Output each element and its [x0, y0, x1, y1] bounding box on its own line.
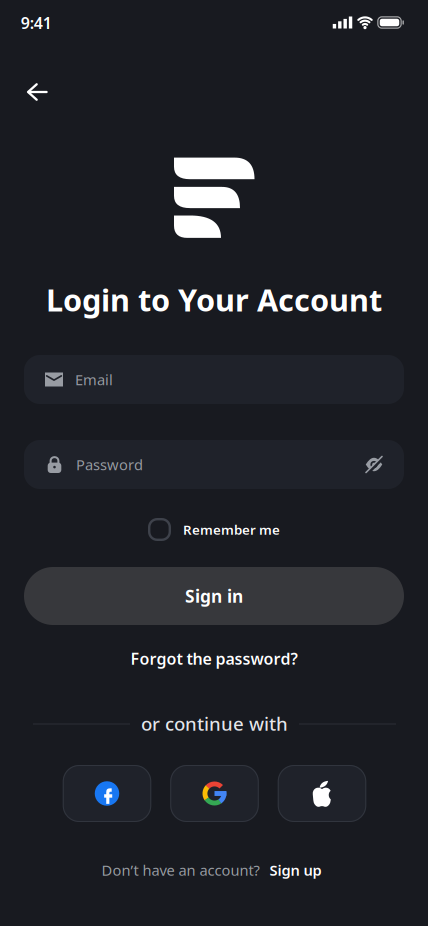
- button[interactable]: Remember me: [148, 518, 280, 541]
- button[interactable]: Password: [24, 440, 404, 489]
- staticText: Forgot the password?: [130, 648, 297, 669]
- staticText: Sign up: [269, 860, 321, 880]
- staticText: Sign in: [185, 584, 243, 607]
- button[interactable]: Sign up: [269, 860, 321, 880]
- staticText: or continue with: [141, 711, 288, 736]
- button[interactable]: Continue with Facebook: [63, 765, 151, 822]
- staticText: Remember me: [183, 521, 280, 538]
- button[interactable]: Back: [19, 75, 55, 109]
- button[interactable]: Continue with Google: [170, 765, 259, 822]
- staticText: 9:41: [21, 12, 52, 33]
- staticText: Password: [76, 455, 143, 474]
- button[interactable]: Continue with Apple: [278, 765, 366, 822]
- staticText: Don’t have an account?: [101, 860, 259, 880]
- button[interactable]: Email: [24, 355, 404, 404]
- button[interactable]: Forgot the password?: [124, 642, 303, 675]
- button[interactable]: Sign in: [24, 567, 404, 625]
- staticText: Login to Your Account: [46, 279, 382, 320]
- staticText: Email: [75, 370, 113, 389]
